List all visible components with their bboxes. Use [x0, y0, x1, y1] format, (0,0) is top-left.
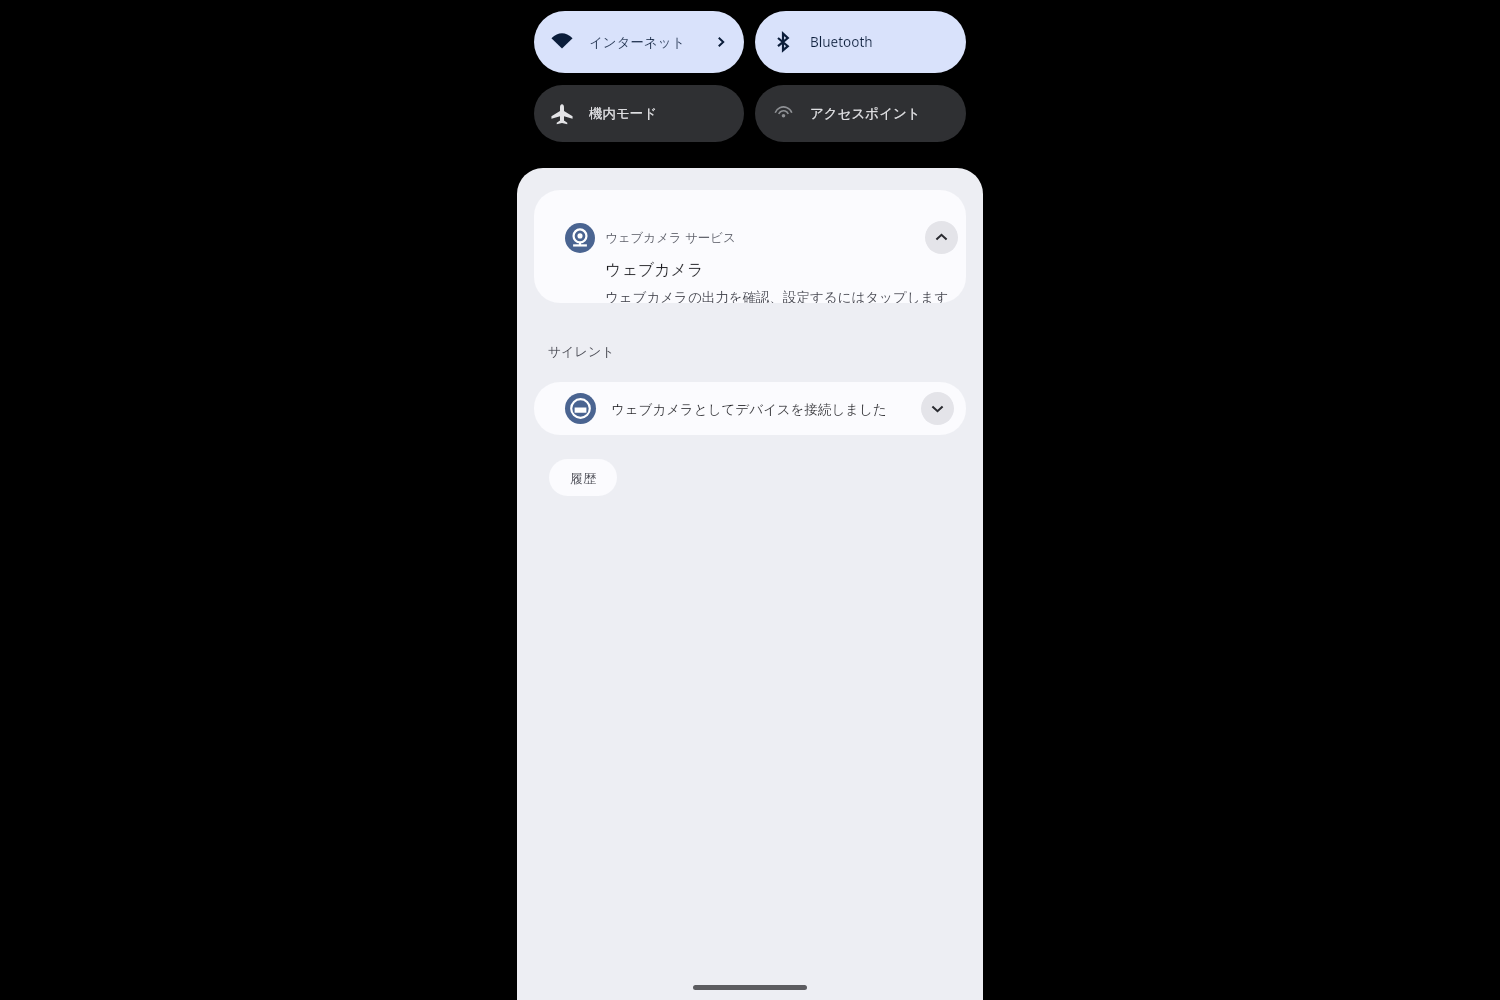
button[interactable]: ウェブカメラ サービス [534, 190, 966, 303]
button[interactable]: 折りたたむ [925, 221, 958, 254]
button[interactable]: ウェブカメラとしてデバイスを接続しました [534, 382, 966, 435]
button[interactable]: 履歴 [549, 459, 617, 496]
staticText: 機内モード [589, 105, 658, 122]
staticText: ウェブカメラの出力を確認、設定するにはタップします [605, 289, 949, 303]
staticText: サイレント [548, 343, 615, 359]
staticText: インターネット [589, 34, 686, 51]
button[interactable]: インターネット [534, 11, 744, 73]
button[interactable]: 機内モード [534, 85, 744, 142]
button[interactable]: 展開 [921, 392, 954, 425]
staticText: ウェブカメラ [605, 260, 704, 280]
button[interactable]: アクセスポイント [755, 85, 966, 142]
staticText: Bluetooth [810, 33, 873, 51]
staticText: アクセスポイント [810, 105, 921, 122]
staticText: ウェブカメラ サービス [605, 229, 736, 246]
staticText: 履歴 [570, 470, 596, 486]
button[interactable]: Bluetooth [755, 11, 966, 73]
staticText: ウェブカメラとしてデバイスを接続しました [611, 401, 887, 418]
